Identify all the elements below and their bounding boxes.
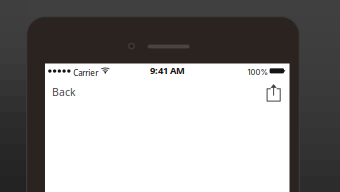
staticText: Carrier [73,67,98,78]
button[interactable]: Share [262,77,288,106]
staticText: 100% [248,67,269,77]
button[interactable]: Back [51,77,83,106]
staticText: 9:41 AM [150,64,185,77]
staticText: Back [52,85,76,99]
